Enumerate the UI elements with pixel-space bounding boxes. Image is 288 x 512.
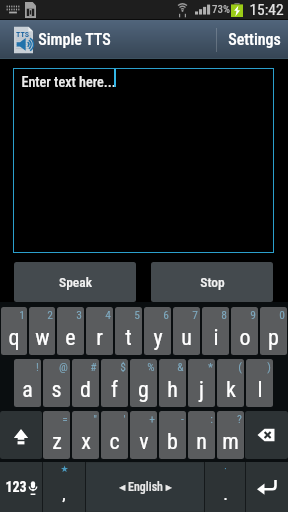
staticText: $ [120, 360, 126, 373]
staticText: l [257, 377, 263, 403]
button[interactable]: - [159, 411, 186, 459]
staticText: · [224, 464, 227, 475]
staticText: = [62, 412, 68, 425]
button[interactable]: Backspace [245, 411, 288, 459]
button[interactable]: " [72, 411, 99, 459]
button[interactable]: # [72, 359, 99, 407]
staticText: 15:42 [249, 1, 284, 19]
staticText: d [80, 377, 91, 403]
staticText: 5 [134, 308, 140, 321]
staticText: m [222, 429, 239, 455]
staticText: @ [59, 360, 68, 373]
staticText: s [51, 377, 62, 403]
staticText: r [96, 325, 103, 351]
button[interactable]: 6 [144, 307, 171, 355]
staticText: f [111, 377, 118, 403]
staticText: e [65, 325, 76, 351]
button[interactable]: $ [101, 359, 128, 407]
button[interactable]: Shift [0, 411, 42, 459]
staticText: 4 [105, 308, 111, 321]
staticText: n [196, 429, 207, 455]
staticText: b [167, 429, 178, 455]
button[interactable]: ? [217, 411, 244, 459]
button[interactable]: Enter [246, 462, 288, 512]
staticText: j [199, 377, 204, 403]
button[interactable]: 7 [173, 307, 200, 355]
staticText: % [147, 360, 155, 373]
button[interactable]: Stop [151, 262, 273, 302]
button[interactable]: Symbols [0, 462, 42, 512]
staticText: x [81, 429, 91, 455]
staticText: Simple TTS [38, 30, 111, 49]
staticText: ' [123, 412, 126, 425]
staticText: y [153, 325, 163, 351]
staticText: u [181, 325, 192, 351]
button[interactable]: 1 [1, 307, 27, 355]
staticText: q [8, 325, 20, 351]
button[interactable]: Settings [216, 20, 288, 59]
staticText: t [125, 325, 132, 351]
button[interactable]: 5 [115, 307, 142, 355]
button[interactable]: 2 [29, 307, 55, 355]
staticText: 1 [19, 308, 25, 321]
staticText: w [35, 325, 50, 351]
staticText: + [149, 412, 155, 425]
staticText: " [93, 412, 97, 425]
button[interactable]: 9 [231, 307, 258, 355]
staticText: h [167, 377, 178, 403]
button[interactable]: 8 [202, 307, 229, 355]
staticText: p [268, 325, 279, 351]
button[interactable]: ( [217, 359, 244, 407]
staticText: 2 [47, 308, 53, 321]
staticText: TTS [16, 30, 29, 39]
button[interactable]: Enter text here... [13, 68, 274, 253]
button[interactable]: 3 [57, 307, 84, 355]
staticText: ( [238, 360, 242, 373]
staticText: 6 [163, 308, 169, 321]
button[interactable]: & [159, 359, 186, 407]
button[interactable]: · [205, 462, 245, 512]
button[interactable]: : [188, 411, 215, 459]
staticText: ◂ English ▸ [119, 480, 172, 494]
button[interactable]: ! [14, 359, 41, 407]
staticText: a [22, 377, 33, 403]
button[interactable]: + [130, 411, 157, 459]
staticText: 0 [279, 308, 285, 321]
button[interactable]: @ [43, 359, 70, 407]
button[interactable]: Speak [14, 262, 136, 302]
button[interactable]: Space [86, 463, 204, 511]
staticText: 3 [76, 308, 82, 321]
staticText: g [138, 377, 149, 403]
staticText: 123 [5, 479, 27, 495]
staticText: o [239, 325, 251, 351]
staticText: i [213, 325, 219, 351]
staticText: 9 [250, 308, 256, 321]
staticText: ★ [60, 464, 69, 474]
staticText: . [223, 486, 228, 504]
staticText: Settings [228, 30, 281, 49]
staticText: Enter text here... [21, 74, 116, 91]
staticText: * [208, 360, 213, 373]
staticText: 7 [192, 308, 198, 321]
button[interactable]: 4 [86, 307, 113, 355]
staticText: ) [267, 360, 271, 373]
button[interactable]: 0 [260, 307, 287, 355]
staticText: z [52, 429, 62, 455]
button[interactable]: ' [101, 411, 128, 459]
button[interactable]: ) [246, 359, 273, 407]
staticText: Stop [200, 274, 225, 290]
staticText: v [139, 429, 149, 455]
staticText: & [177, 360, 184, 373]
staticText: 73% [212, 3, 230, 16]
staticText: Speak [59, 274, 92, 290]
staticText: , [62, 486, 66, 504]
staticText: 8 [221, 308, 227, 321]
button[interactable]: % [130, 359, 157, 407]
staticText: c [109, 429, 120, 455]
staticText: ! [36, 360, 39, 373]
button[interactable]: = [43, 411, 70, 459]
staticText: k [226, 377, 236, 403]
button[interactable]: ★ [43, 462, 85, 512]
button[interactable]: * [188, 359, 215, 407]
staticText: # [90, 360, 97, 373]
